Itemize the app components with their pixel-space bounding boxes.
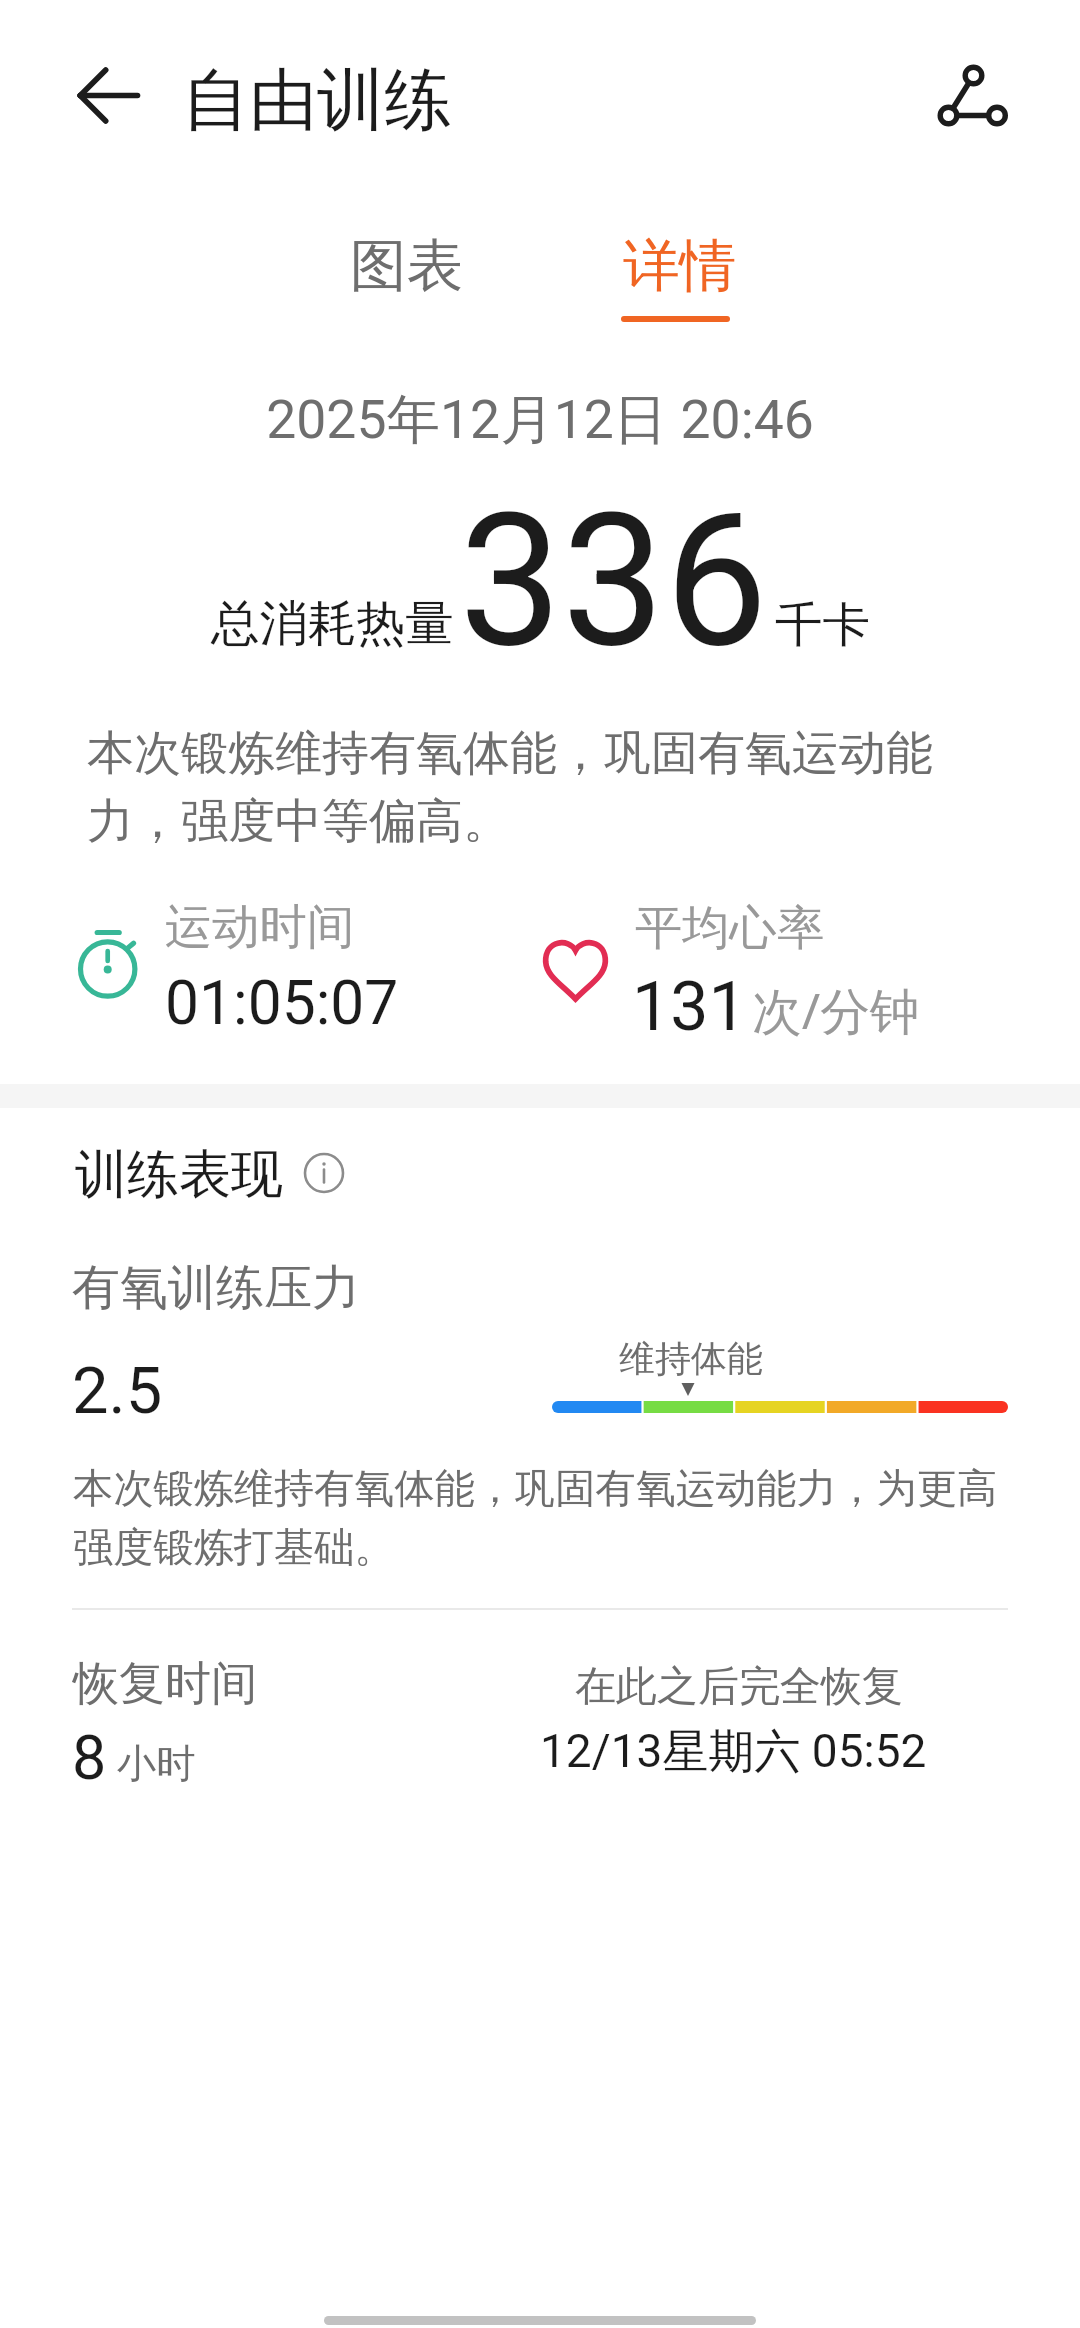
staticText: 2025年12月12日 20:46 [0, 386, 1080, 453]
button[interactable]: 详情 [556, 214, 802, 326]
staticText: 小时 [117, 1739, 196, 1789]
staticText: 训练表现 [75, 1142, 283, 1208]
staticText: 8 [72, 1722, 107, 1793]
staticText: 自由训练 [182, 58, 452, 143]
staticText: 2.5 [72, 1353, 163, 1429]
staticText: 维持体能 [619, 1336, 763, 1381]
staticText: 131 [632, 967, 747, 1047]
staticText: 详情 [623, 231, 736, 302]
staticText: 运动时间 [165, 897, 355, 957]
staticText: 总消耗热量 [211, 593, 454, 654]
button[interactable]: 图表 [283, 214, 529, 326]
staticText: 01:05:07 [165, 968, 399, 1039]
staticText: 12/13星期六 05:52 [540, 1723, 927, 1781]
staticText: 次/分钟 [752, 976, 920, 1044]
staticText: 336 [459, 474, 768, 688]
staticText: 有氧训练压力 [72, 1258, 360, 1318]
staticText: 图表 [350, 231, 463, 302]
staticText: 本次锻炼维持有氧体能，巩固有氧运动能力，为更高强度锻炼打基础。 [73, 1463, 1013, 1573]
staticText: 千卡 [775, 595, 870, 655]
staticText: 在此之后完全恢复 [575, 1661, 903, 1713]
button[interactable]: Info [299, 1148, 349, 1198]
button[interactable]: Back [54, 48, 156, 150]
staticText: 恢复时间 [73, 1655, 257, 1713]
staticText: 本次锻炼维持有氧体能，巩固有氧运动能力，强度中等偏高。 [87, 724, 953, 851]
staticText: 平均心率 [635, 898, 825, 958]
button[interactable]: Share [918, 47, 1020, 149]
